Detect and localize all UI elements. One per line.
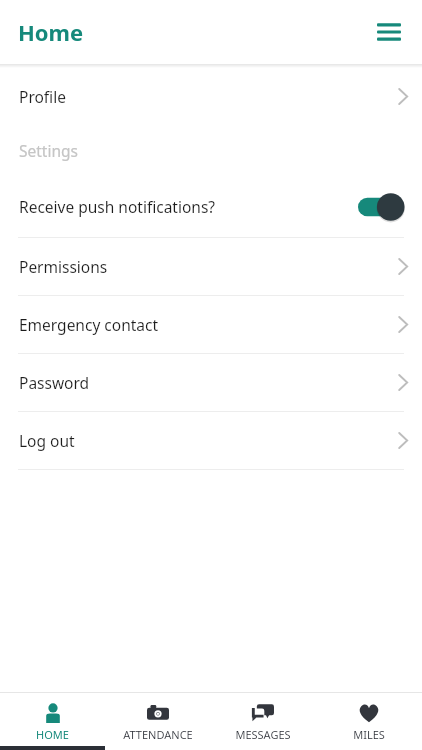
button[interactable]: HOME	[0, 693, 105, 750]
staticText: Settings	[19, 140, 78, 161]
staticText: MESSAGES	[235, 727, 291, 742]
staticText: HOME	[36, 727, 69, 742]
button[interactable]: Profile	[0, 68, 422, 125]
staticText: ATTENDANCE	[123, 727, 193, 742]
button[interactable]: MILES	[316, 693, 422, 750]
staticText: Log out	[19, 430, 75, 451]
staticText: Password	[19, 372, 90, 393]
button[interactable]: Password	[0, 354, 422, 411]
staticText: Profile	[19, 86, 66, 107]
button[interactable]: Emergency contact	[0, 296, 422, 353]
staticText: Home	[18, 17, 84, 47]
staticText: Receive push notifications?	[19, 196, 216, 217]
button[interactable]: Log out	[0, 412, 422, 469]
staticText: Permissions	[19, 256, 108, 277]
button[interactable]: Open navigation menu	[368, 11, 410, 53]
button[interactable]: Permissions	[0, 238, 422, 295]
staticText: Emergency contact	[19, 314, 159, 335]
button[interactable]: MESSAGES	[210, 693, 316, 750]
button[interactable]: ATTENDANCE	[105, 693, 210, 750]
staticText: MILES	[353, 727, 385, 742]
button[interactable]: Receive push notifications?	[0, 176, 422, 237]
